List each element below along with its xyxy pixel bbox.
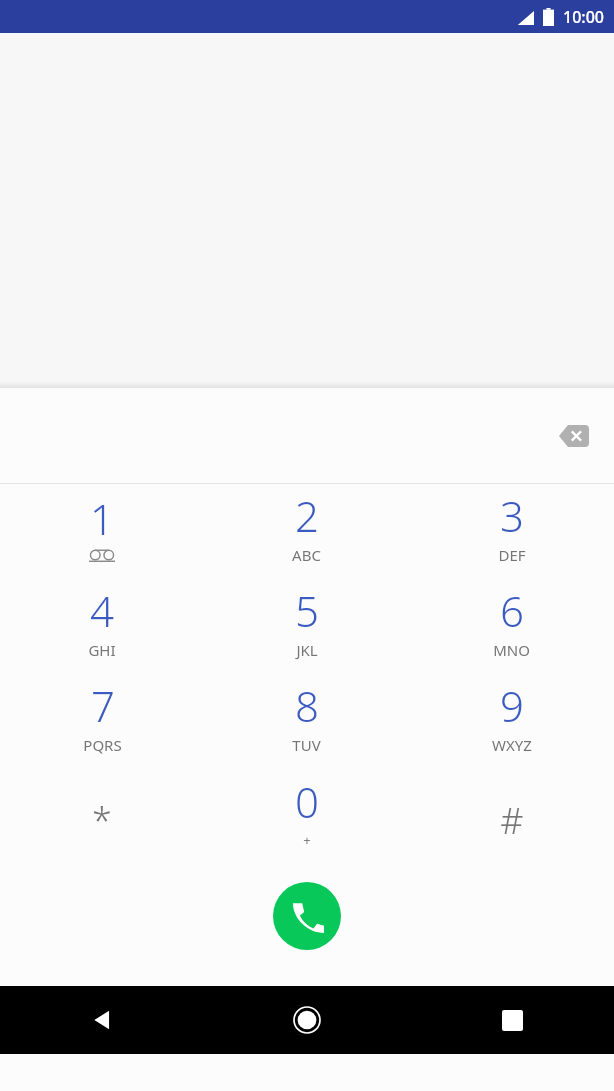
staticText: DEF xyxy=(498,545,526,565)
staticText: # xyxy=(500,796,524,845)
staticText: 1 xyxy=(90,490,114,547)
staticText: 0 xyxy=(295,773,319,830)
button[interactable]: # xyxy=(409,769,614,864)
staticText: JKL xyxy=(296,640,318,660)
staticText: 7 xyxy=(91,677,115,734)
button[interactable]: Home xyxy=(283,996,331,1044)
staticText: 9 xyxy=(500,677,524,734)
button[interactable]: 7 xyxy=(0,674,204,769)
staticText: 2 xyxy=(295,487,319,544)
button[interactable]: Recents xyxy=(488,996,536,1044)
button[interactable]: Back xyxy=(78,996,126,1044)
button[interactable]: 1 xyxy=(0,484,204,579)
staticText: * xyxy=(92,796,112,845)
staticText: 5 xyxy=(295,582,319,639)
button[interactable]: Call xyxy=(273,882,341,950)
staticText: + xyxy=(303,831,311,849)
button[interactable]: 2 xyxy=(204,484,409,579)
staticText: 6 xyxy=(500,582,524,639)
button[interactable]: Backspace xyxy=(550,412,598,460)
button[interactable]: 3 xyxy=(409,484,614,579)
button[interactable]: 4 xyxy=(0,579,204,674)
staticText: GHI xyxy=(88,640,116,660)
staticText: PQRS xyxy=(83,735,122,755)
staticText: ABC xyxy=(292,545,321,565)
staticText: WXYZ xyxy=(492,735,532,755)
staticText: TUV xyxy=(292,735,321,755)
staticText: MNO xyxy=(493,640,530,660)
staticText: 4 xyxy=(90,582,114,639)
button[interactable]: 9 xyxy=(409,674,614,769)
button[interactable]: 0 xyxy=(204,769,409,864)
button[interactable]: 8 xyxy=(204,674,409,769)
staticText: 3 xyxy=(500,487,524,544)
staticText: 10:00 xyxy=(563,6,604,28)
button[interactable]: * xyxy=(0,769,204,864)
button[interactable]: 6 xyxy=(409,579,614,674)
button[interactable]: 5 xyxy=(204,579,409,674)
staticText: 8 xyxy=(295,677,319,734)
